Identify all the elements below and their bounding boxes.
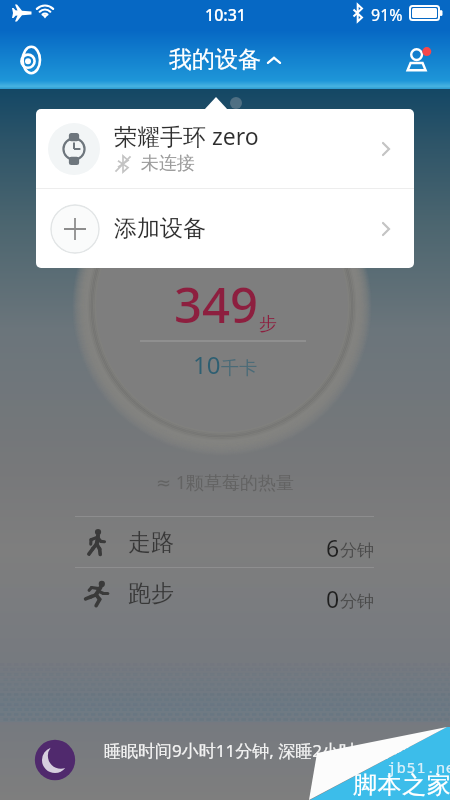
staticText: 0	[326, 583, 340, 614]
staticText: 步	[259, 313, 277, 336]
staticText: 10:31	[205, 4, 246, 26]
button[interactable]: Assistant	[8, 37, 54, 83]
staticText: ≈ 1颗草莓的热量	[0, 470, 450, 495]
staticText: 6	[326, 532, 340, 563]
staticText: 添加设备	[114, 214, 206, 243]
staticText: 跑步	[128, 579, 174, 608]
staticText: 荣耀手环 zero	[114, 120, 259, 151]
button[interactable]: 我的设备	[169, 45, 282, 74]
staticText: jb51.net	[387, 757, 450, 777]
staticText: 我的设备	[169, 45, 261, 74]
button[interactable]: 添加设备	[36, 189, 414, 268]
staticText: 分钟	[340, 540, 374, 561]
staticText: 脚本之家	[353, 770, 450, 800]
staticText: 千卡	[221, 357, 257, 380]
staticText: 睡眠时间9小时11分钟, 深睡2小时23分钟	[104, 739, 410, 762]
staticText: 91%	[371, 4, 403, 26]
staticText: 走路	[128, 528, 174, 557]
staticText: 未连接	[141, 152, 195, 175]
button[interactable]: 跑步	[75, 568, 374, 618]
button[interactable]: 荣耀手环 zero	[36, 109, 414, 188]
staticText: 349	[174, 271, 259, 338]
button[interactable]: Profile	[396, 37, 442, 83]
staticText: 10	[193, 348, 221, 381]
staticText: 分钟	[340, 591, 374, 612]
button[interactable]: 走路	[75, 517, 374, 567]
